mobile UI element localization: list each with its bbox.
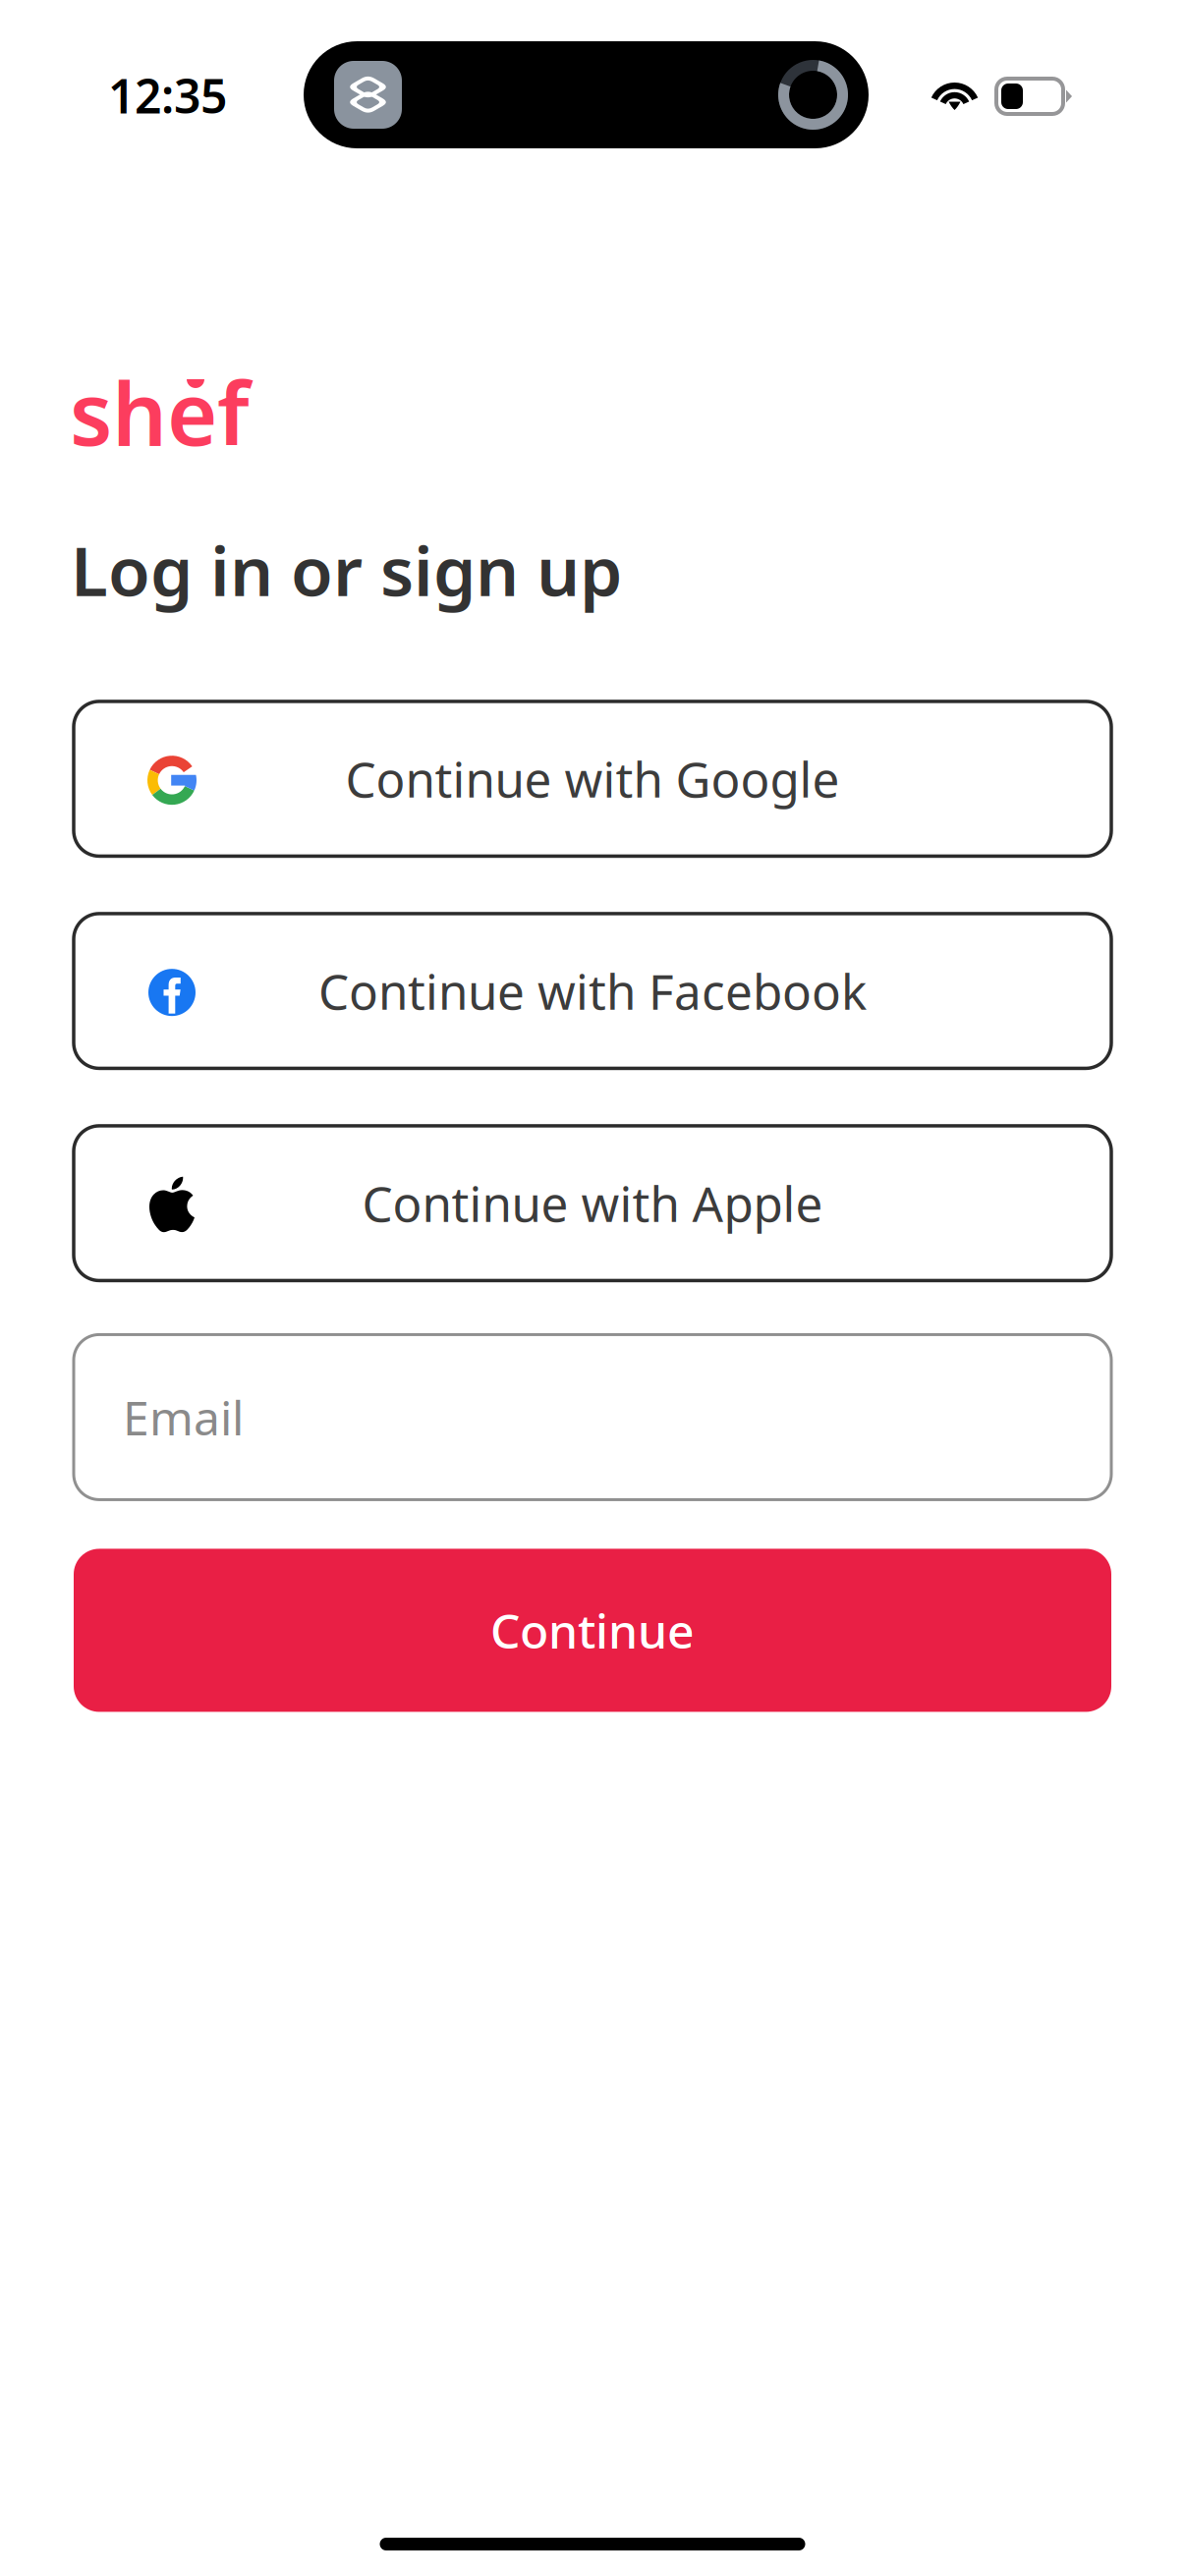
staticText: Email [123,1386,244,1448]
staticText: Continue with Facebook [318,959,867,1023]
staticText: 12:35 [108,64,227,126]
button[interactable]: Continue [74,1549,1111,1712]
staticText: Continue with Apple [362,1171,823,1235]
button[interactable]: Continue with Facebook [74,914,1111,1068]
button[interactable]: Continue with Google [74,701,1111,856]
staticText: shef [70,355,250,470]
button[interactable]: Continue with Apple [74,1126,1111,1281]
button[interactable]: Email [74,1335,1111,1500]
staticText: Continue [490,1599,695,1662]
staticText: Continue with Google [345,747,840,811]
staticText: Log in or sign up [71,525,622,615]
